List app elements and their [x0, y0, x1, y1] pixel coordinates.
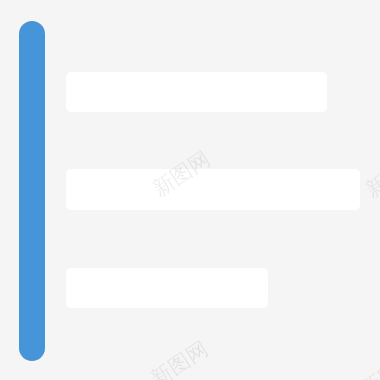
button[interactable]: Align left	[19, 21, 45, 361]
staticText: 新图网	[146, 336, 213, 380]
staticText: 新图网	[148, 146, 215, 202]
staticText: 新图网	[361, 147, 380, 203]
